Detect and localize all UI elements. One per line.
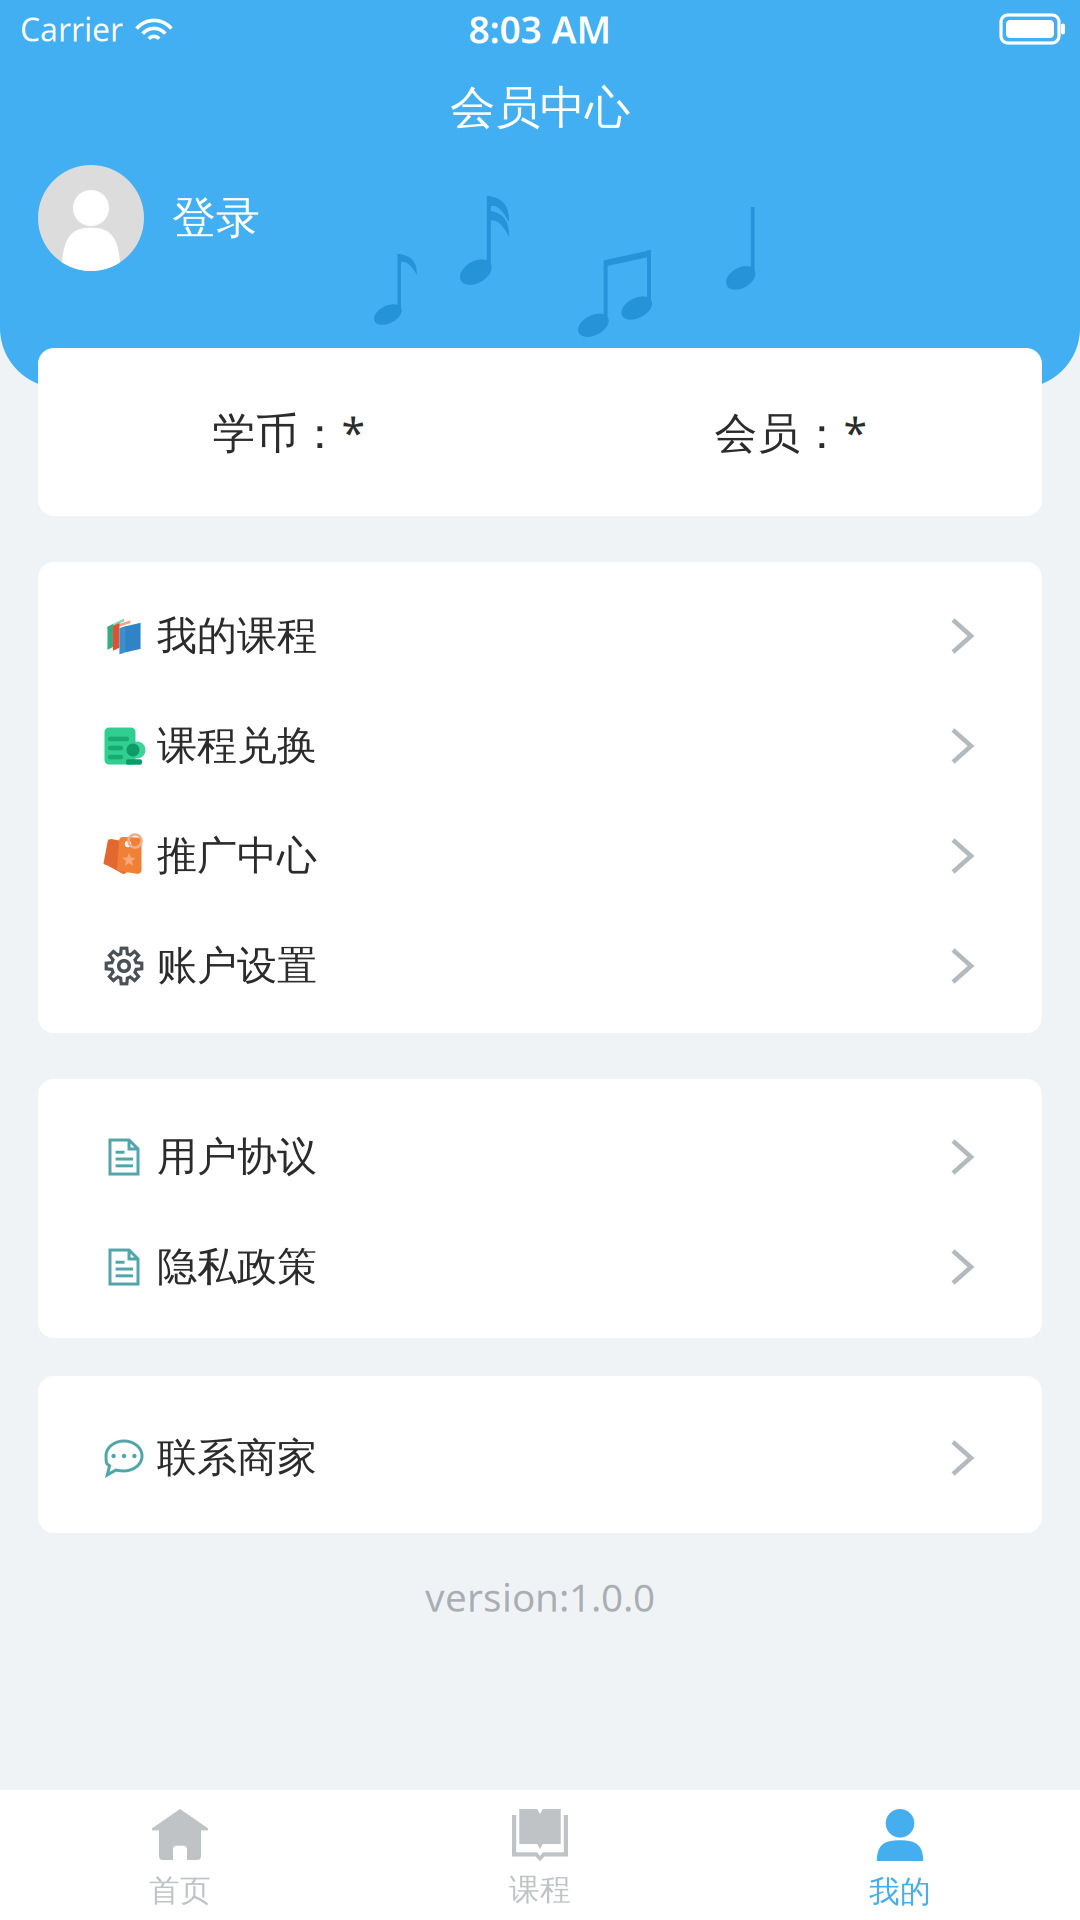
button[interactable]: 我的 — [720, 1790, 1080, 1920]
button[interactable]: 推广中心 — [38, 797, 1042, 907]
button[interactable]: 首页 — [0, 1790, 360, 1920]
staticText: 我的课程 — [157, 611, 317, 660]
staticText: 我的 — [869, 1873, 931, 1911]
staticText: 学币：* — [212, 404, 365, 460]
button[interactable]: 课程 — [360, 1790, 720, 1920]
button[interactable]: 联系商家 — [38, 1399, 1042, 1509]
button[interactable]: 登录 — [38, 165, 260, 271]
staticText: 会员中心 — [450, 80, 630, 136]
staticText: 账户设置 — [157, 941, 317, 990]
button[interactable]: 账户设置 — [38, 907, 1042, 1017]
staticText: 联系商家 — [157, 1433, 317, 1482]
staticText: 隐私政策 — [157, 1242, 317, 1291]
staticText: 登录 — [172, 191, 260, 245]
staticText: 课程 — [509, 1871, 571, 1909]
staticText: 首页 — [149, 1872, 211, 1910]
button[interactable]: 隐私政策 — [38, 1208, 1042, 1318]
staticText: version:1.0.0 — [425, 1571, 655, 1622]
button[interactable]: 我的课程 — [38, 577, 1042, 687]
staticText: Carrier — [20, 8, 123, 50]
staticText: 推广中心 — [157, 831, 317, 880]
button[interactable]: 课程兑换 — [38, 687, 1042, 797]
staticText: 会员：* — [714, 404, 867, 460]
button[interactable]: 用户协议 — [38, 1098, 1042, 1208]
staticText: 8:03 AM — [468, 4, 611, 54]
staticText: 课程兑换 — [157, 721, 317, 770]
staticText: 用户协议 — [157, 1132, 317, 1181]
